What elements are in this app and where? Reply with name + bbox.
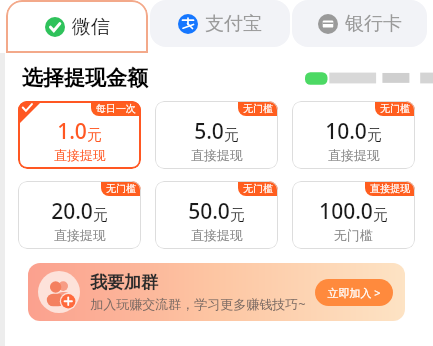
staticText: 立即加入 > [327, 285, 381, 300]
staticText: 无门槛 [106, 182, 136, 195]
staticText: 无门槛 [334, 227, 373, 243]
staticText: 银行卡 [345, 12, 402, 36]
staticText: 元 [367, 126, 382, 145]
other: Join group [38, 271, 80, 313]
staticText: 直接提现 [370, 182, 410, 195]
button[interactable]: Join group [28, 263, 405, 321]
staticText: 直接提现 [191, 227, 243, 243]
staticText: 直接提现 [191, 147, 243, 163]
button[interactable]: 立即加入 > [327, 285, 381, 300]
button[interactable]: 每日一次 [18, 101, 141, 169]
button[interactable]: 无门槛 [18, 181, 141, 249]
staticText: 无门槛 [243, 102, 273, 115]
staticText: 选择提现金额 [22, 65, 148, 91]
button[interactable]: 微信 [6, 0, 148, 53]
staticText: 支付宝 [205, 12, 262, 36]
staticText: 微信 [72, 15, 110, 39]
button[interactable]: 无门槛 [155, 181, 278, 249]
staticText: 20.0 [51, 197, 93, 226]
staticText: 50.0 [188, 197, 230, 226]
staticText: 元 [230, 206, 245, 225]
staticText: 无门槛 [243, 182, 273, 195]
staticText: 加入玩赚交流群，学习更多赚钱技巧~ [90, 295, 306, 313]
staticText: 直接提现 [54, 147, 106, 163]
staticText: 元 [224, 126, 239, 145]
button[interactable]: 银行卡 [292, 0, 427, 47]
staticText: 10.0 [325, 117, 367, 146]
button[interactable]: 无门槛 [155, 101, 278, 169]
staticText: 直接提现 [54, 227, 106, 243]
button[interactable]: 直接提现 [292, 181, 415, 249]
button[interactable]: 支付宝 [150, 0, 290, 47]
staticText: 100.0 [319, 197, 373, 226]
button[interactable]: 无门槛 [292, 101, 415, 169]
staticText: 元 [93, 206, 108, 225]
staticText: 我要加群 [90, 272, 158, 293]
staticText: 元 [373, 206, 388, 225]
staticText: 1.0 [57, 117, 87, 146]
staticText: 直接提现 [328, 147, 380, 163]
staticText: 元 [87, 126, 102, 145]
staticText: 每日一次 [96, 102, 136, 115]
staticText: 无门槛 [380, 102, 410, 115]
staticText: 5.0 [194, 117, 224, 146]
